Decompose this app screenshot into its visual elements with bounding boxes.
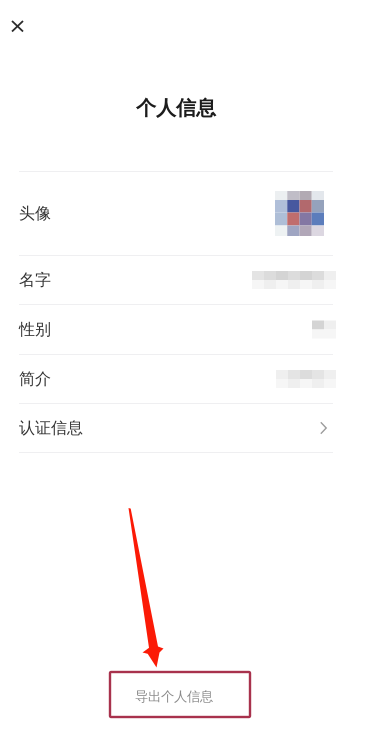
staticText: 导出个人信息 [135,688,213,705]
button[interactable]: 性别 [0,305,352,354]
button[interactable]: 简介 [0,355,352,403]
staticText: 头像 [19,204,51,223]
button[interactable]: 导出个人信息 [104,674,244,719]
staticText: 个人信息 [136,96,216,120]
button[interactable]: 名字 [0,256,352,304]
staticText: 认证信息 [19,418,83,438]
button[interactable]: Close [0,0,39,47]
staticText: 名字 [19,270,51,290]
staticText: 简介 [19,369,51,389]
button[interactable]: 认证信息 [0,404,352,452]
button[interactable]: 头像 [0,172,352,255]
staticText: 性别 [19,320,51,339]
